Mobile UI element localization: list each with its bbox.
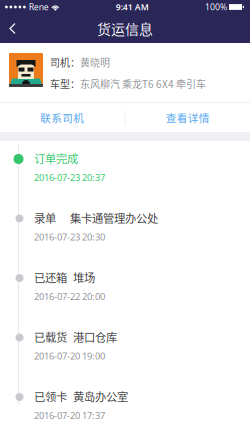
staticText: Rene: [29, 1, 49, 13]
staticText: 已领卡: [34, 388, 67, 404]
button[interactable]: Back: [0, 14, 25, 43]
staticText: 黄晓明: [80, 55, 110, 69]
staticText: 9:41 AM: [116, 1, 149, 13]
staticText: 100%: [205, 1, 227, 13]
staticText: 录单: [34, 209, 56, 226]
staticText: 2016-07-22 20:00: [34, 290, 105, 303]
staticText: 查看详情: [166, 110, 210, 125]
staticText: 已还箱: [34, 269, 67, 285]
staticText: 堆场: [73, 269, 95, 285]
staticText: 黄岛办公室: [73, 388, 128, 404]
staticText: 2016-07-20 17:37: [34, 409, 105, 422]
staticText: 2016-07-20 19:00: [34, 349, 105, 362]
button[interactable]: 联系司机: [0, 103, 125, 132]
staticText: 货运信息: [97, 18, 153, 39]
staticText: 车型：: [50, 76, 80, 91]
staticText: 东风柳汽 乘龙T6 6X4 牵引车: [80, 76, 206, 91]
staticText: 2016-07-23 20:37: [34, 171, 105, 184]
staticText: 已载货: [34, 328, 67, 345]
staticText: 港口仓库: [73, 328, 117, 345]
button[interactable]: 查看详情: [125, 103, 250, 132]
staticText: 司机：: [50, 55, 80, 69]
staticText: 集卡通管理办公处: [70, 209, 158, 226]
staticText: 订单完成: [34, 150, 78, 166]
staticText: 2016-07-23 20:30: [34, 230, 105, 243]
staticText: 联系司机: [40, 110, 84, 125]
